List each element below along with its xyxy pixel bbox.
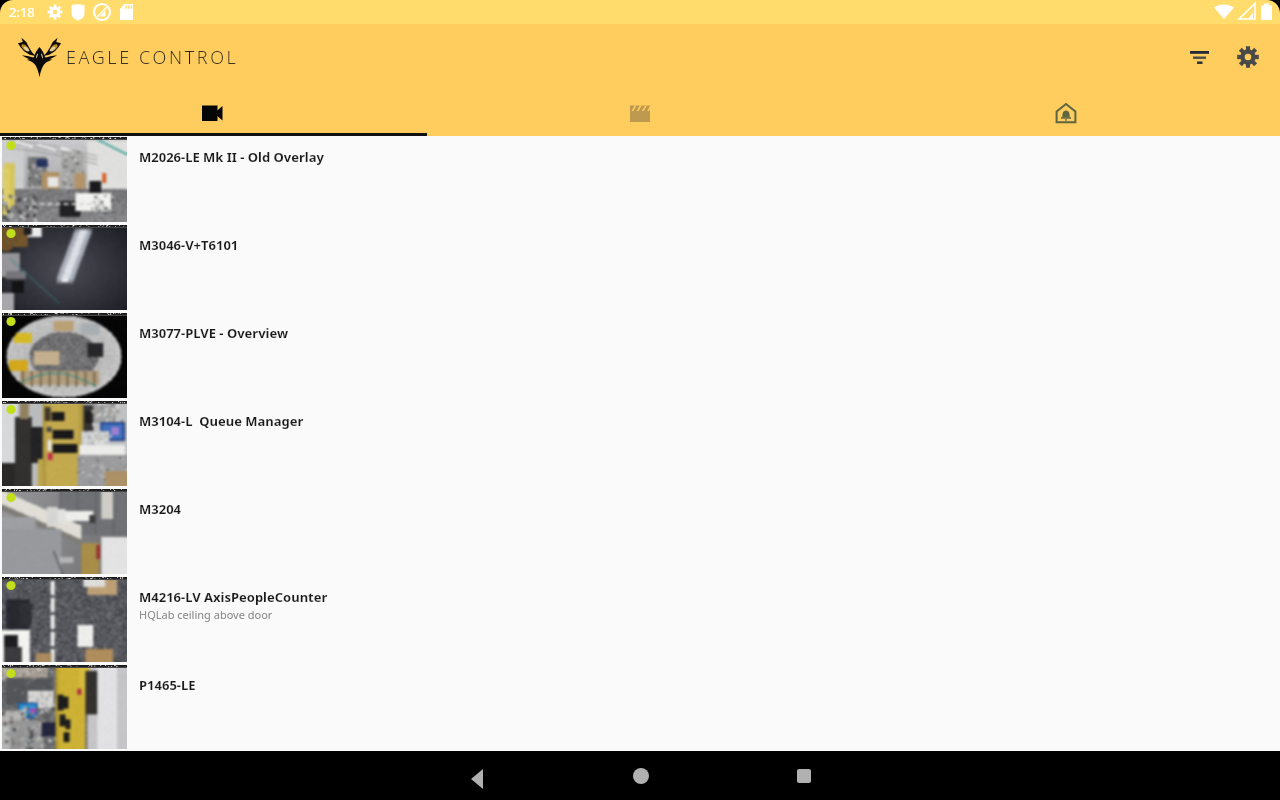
staticText: M2026-LE Mk II - Old Overlay xyxy=(139,148,324,166)
button[interactable]: Live view xyxy=(0,90,426,136)
button[interactable]: M3077-PLVE - Overview xyxy=(0,312,1280,400)
button[interactable]: Recents xyxy=(722,751,885,800)
button[interactable]: Settings xyxy=(1224,33,1272,81)
button[interactable]: P1465-LE xyxy=(0,664,1280,751)
button[interactable]: Back xyxy=(396,751,559,800)
staticText: M3077-PLVE - Overview xyxy=(139,324,289,342)
staticText: EAGLE CONTROL xyxy=(66,45,239,70)
staticText: M3204 xyxy=(139,500,182,518)
button[interactable]: M3104-L Queue Manager xyxy=(0,400,1280,488)
staticText: M4216-LV AxisPeopleCounter xyxy=(139,588,328,606)
button[interactable]: Home xyxy=(559,751,722,800)
button[interactable]: M3046-V+T6101 xyxy=(0,224,1280,312)
button[interactable]: M4216-LV AxisPeopleCounter xyxy=(0,576,1280,664)
staticText: M3046-V+T6101 xyxy=(139,236,239,254)
button[interactable]: M2026-LE Mk II - Old Overlay xyxy=(0,136,1280,224)
button[interactable]: M3204 xyxy=(0,488,1280,576)
staticText: 2:18 xyxy=(9,3,35,21)
button[interactable]: Home alarms xyxy=(853,90,1280,136)
staticText: M3104-L Queue Manager xyxy=(139,412,304,430)
button[interactable]: Filter xyxy=(1176,33,1224,81)
button[interactable]: Recordings xyxy=(426,90,853,136)
staticText: P1465-LE xyxy=(139,676,196,694)
staticText: HQLab ceiling above door xyxy=(139,607,273,622)
